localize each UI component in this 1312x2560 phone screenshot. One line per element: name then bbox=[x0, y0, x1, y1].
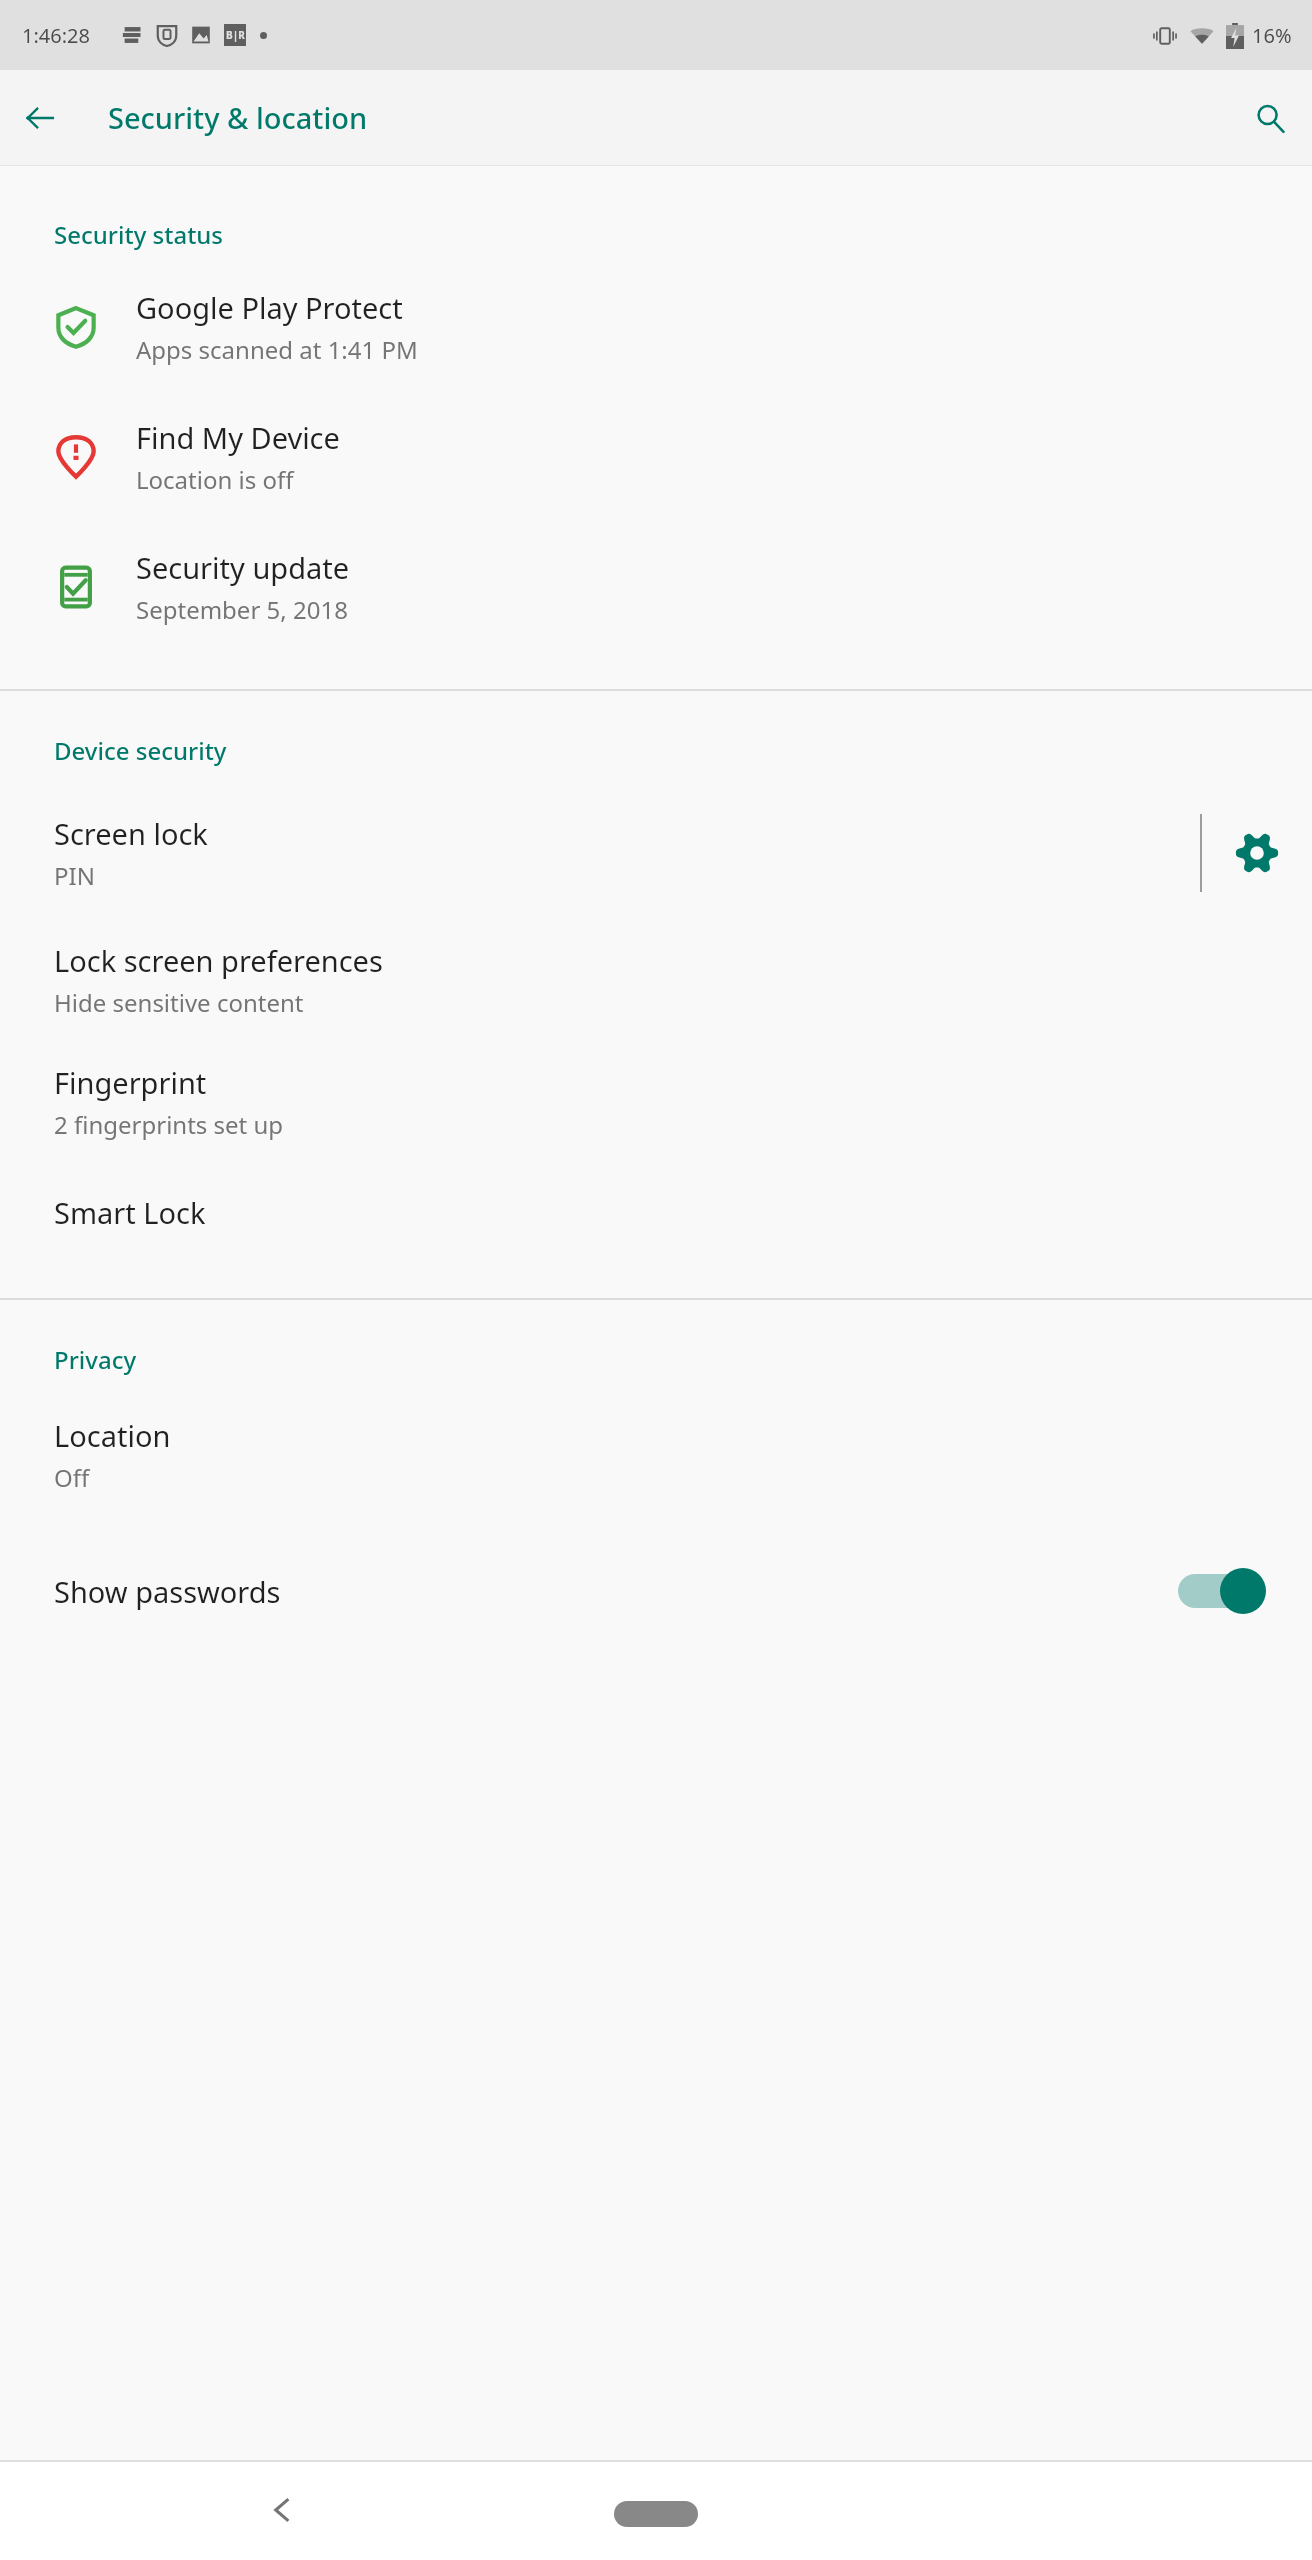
staticText: Device security bbox=[54, 734, 227, 767]
staticText: Privacy bbox=[54, 1343, 137, 1376]
button[interactable]: Smart Lock bbox=[0, 1187, 1312, 1238]
button[interactable]: Screen lock settings bbox=[1202, 801, 1312, 905]
button[interactable]: Home bbox=[614, 2501, 698, 2527]
button[interactable]: Back bbox=[250, 2478, 314, 2542]
staticText: Hide sensitive content bbox=[54, 986, 304, 1019]
staticText: B|R bbox=[226, 28, 245, 42]
button[interactable]: Security update bbox=[0, 535, 1312, 639]
button[interactable]: Fingerprint bbox=[0, 1057, 1312, 1147]
staticText: Smart Lock bbox=[54, 1193, 206, 1232]
staticText: Apps scanned at 1:41 PM bbox=[136, 333, 418, 366]
staticText: Location bbox=[54, 1416, 171, 1455]
staticText: Security status bbox=[54, 218, 224, 251]
staticText: 1:46:28 bbox=[22, 22, 90, 49]
button[interactable]: Search bbox=[1242, 90, 1298, 146]
button[interactable]: Lock screen preferences bbox=[0, 935, 1312, 1025]
button[interactable]: Find My Device bbox=[0, 405, 1312, 509]
staticText: Off bbox=[54, 1461, 90, 1494]
staticText: Screen lock bbox=[54, 814, 208, 853]
staticText: Fingerprint bbox=[54, 1063, 207, 1102]
staticText: Show passwords bbox=[54, 1572, 1176, 1611]
staticText: 16% bbox=[1252, 22, 1292, 49]
staticText: Security update bbox=[136, 548, 350, 587]
staticText: 2 fingerprints set up bbox=[54, 1108, 284, 1141]
staticText: Find My Device bbox=[136, 418, 340, 457]
staticText: PIN bbox=[54, 859, 95, 892]
staticText: Location is off bbox=[136, 463, 294, 496]
button[interactable]: Location bbox=[0, 1410, 1312, 1500]
button[interactable]: Screen lock bbox=[0, 801, 1200, 905]
button[interactable]: Show passwords bbox=[0, 1536, 1312, 1646]
button[interactable]: Back bbox=[12, 90, 68, 146]
button[interactable]: Google Play Protect bbox=[0, 275, 1312, 379]
staticText: Lock screen preferences bbox=[54, 941, 383, 980]
staticText: September 5, 2018 bbox=[136, 593, 348, 626]
staticText: Google Play Protect bbox=[136, 288, 403, 327]
staticText: Security & location bbox=[108, 98, 368, 137]
